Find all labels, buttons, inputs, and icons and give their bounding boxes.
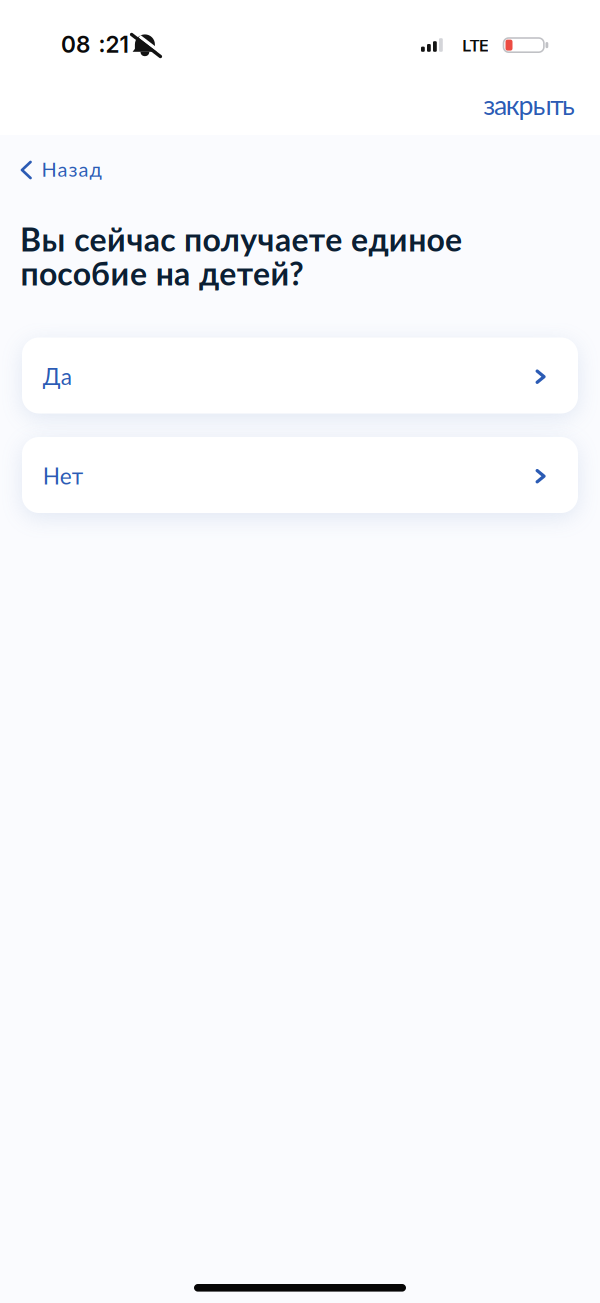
staticText: Вы сейчас получаете единое [20, 220, 462, 258]
staticText: пособие на детей? [20, 254, 304, 292]
button[interactable]: Н а з а д [22, 152, 122, 188]
staticText: закрыть [483, 89, 575, 121]
staticText: Нет [43, 462, 83, 489]
button[interactable]: Нет [22, 437, 578, 513]
staticText: Да [43, 363, 72, 390]
staticText: LTE [462, 36, 489, 55]
staticText: : [98, 30, 105, 58]
staticText: Н а з а д [41, 157, 101, 181]
button[interactable]: Да [22, 337, 578, 413]
button[interactable]: закрыть [477, 85, 581, 125]
staticText: 21 [105, 31, 128, 58]
staticText: 08 [61, 31, 90, 58]
